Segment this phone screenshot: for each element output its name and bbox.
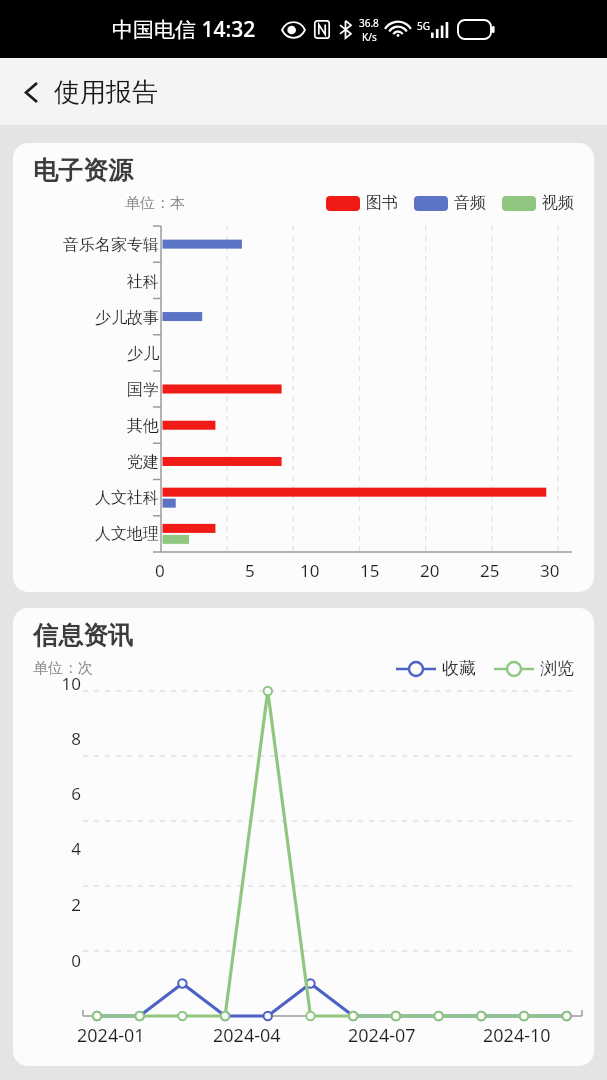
staticText: K/s xyxy=(362,30,377,44)
staticText: 0 xyxy=(155,559,165,582)
button[interactable]: 信息资讯 xyxy=(13,608,594,1066)
staticText: 音频 xyxy=(454,193,486,213)
staticText: 25 xyxy=(480,559,500,582)
staticText: 少儿故事 xyxy=(13,308,159,328)
staticText: 单位：次 xyxy=(33,659,93,678)
staticText: 人文社科 xyxy=(13,488,159,508)
staticText: 2024-07 xyxy=(348,1023,416,1048)
staticText: 信息资讯 xyxy=(33,620,133,651)
staticText: 2024-01 xyxy=(77,1023,145,1048)
staticText: 使用报告 xyxy=(54,76,158,109)
staticText: 0 xyxy=(13,949,81,972)
staticText: 2024-10 xyxy=(483,1023,551,1048)
staticText: 音乐名家专辑 xyxy=(13,235,159,255)
staticText: 党建 xyxy=(13,452,159,472)
staticText: 10 xyxy=(13,672,81,695)
button[interactable]: Back xyxy=(14,75,158,109)
staticText: 收藏 xyxy=(442,658,476,679)
staticText: 电子资源 xyxy=(33,155,133,186)
staticText: 20 xyxy=(420,559,440,582)
staticText: 视频 xyxy=(542,193,574,213)
staticText: 国学 xyxy=(13,380,159,400)
staticText: 5G xyxy=(417,19,430,33)
staticText: 中国电信 14:32 xyxy=(112,15,256,44)
staticText: 其他 xyxy=(13,416,159,436)
staticText: 人文地理 xyxy=(13,524,159,544)
staticText: 10 xyxy=(300,559,320,582)
staticText: 15 xyxy=(360,559,380,582)
button[interactable]: 电子资源 xyxy=(13,143,594,592)
staticText: 单位：本 xyxy=(125,194,185,213)
staticText: 图书 xyxy=(366,193,398,213)
staticText: 30 xyxy=(540,559,560,582)
staticText: 社科 xyxy=(13,272,159,292)
other: Back xyxy=(14,75,48,109)
staticText: 浏览 xyxy=(540,658,574,679)
staticText: 6 xyxy=(13,782,81,805)
staticText: 2 xyxy=(13,893,81,916)
staticText: 8 xyxy=(13,727,81,750)
staticText: 5 xyxy=(245,559,255,582)
staticText: 2024-04 xyxy=(213,1023,281,1048)
staticText: 少儿 xyxy=(13,344,159,364)
staticText: 36.8 xyxy=(359,16,379,30)
staticText: 4 xyxy=(13,837,81,860)
